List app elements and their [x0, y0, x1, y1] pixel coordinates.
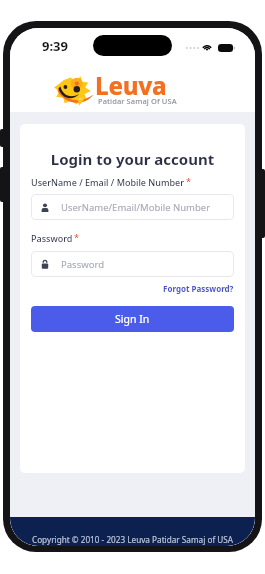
- staticText: Password: [61, 258, 104, 271]
- button[interactable]: Sign In: [31, 306, 234, 332]
- staticText: *: [186, 175, 191, 187]
- staticText: UserName / Email / Mobile Number: [31, 176, 185, 188]
- staticText: Sign In: [115, 312, 150, 326]
- button[interactable]: Password: [31, 251, 234, 277]
- staticText: Patidar Samaj Of USA: [98, 96, 177, 106]
- button[interactable]: UserName/Email/Mobile Number: [31, 194, 234, 220]
- staticText: UserName/Email/Mobile Number: [61, 201, 211, 214]
- staticText: Copyright © 2010 - 2023 Leuva Patidar Sa…: [10, 534, 255, 545]
- staticText: Login to your account: [31, 149, 234, 169]
- button[interactable]: Forgot Password?: [163, 283, 234, 294]
- staticText: Password: [31, 232, 73, 244]
- staticText: Leuva: [95, 69, 167, 102]
- staticText: *: [74, 231, 79, 243]
- staticText: 9:39: [42, 37, 68, 55]
